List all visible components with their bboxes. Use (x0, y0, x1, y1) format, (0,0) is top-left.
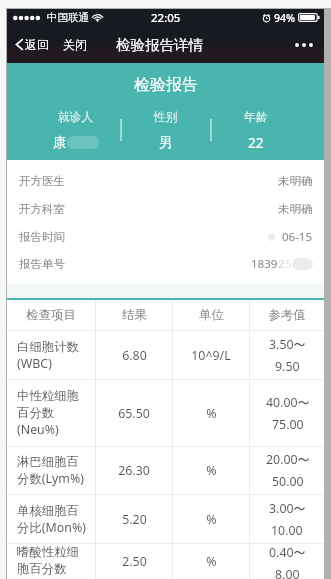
staticText: 20.00 (266, 451, 298, 468)
staticText: 未明确 (278, 174, 313, 188)
staticText: 3.50 (269, 336, 294, 353)
staticText: 10^9/L (191, 347, 231, 364)
staticText: 6.80 (122, 347, 147, 364)
staticText: 返回 (25, 37, 49, 52)
staticText: 报告时间 (19, 230, 65, 244)
staticText: 康 (53, 134, 67, 151)
staticText: 开方科室 (19, 202, 65, 216)
staticText: 检验报告 (134, 75, 198, 95)
button[interactable]: 开方医生 (7, 167, 324, 195)
staticText: 参考值 (268, 307, 306, 323)
staticText: 性别 (154, 110, 178, 125)
staticText: 94% (274, 11, 295, 25)
staticText: 65.50 (118, 405, 150, 422)
staticText: 26.30 (118, 462, 150, 479)
staticText: 中性粒细胞 百分数 (Neu%) (17, 388, 79, 438)
staticText: 中国联通 (47, 11, 89, 24)
button[interactable]: More options (291, 32, 317, 58)
staticText: 22:05 (151, 10, 181, 26)
staticText: 75.00 (272, 416, 304, 433)
staticText: 单位 (199, 307, 224, 323)
staticText: % (206, 511, 217, 528)
staticText: 10.00 (271, 522, 303, 539)
staticText: 开方医生 (19, 174, 65, 188)
staticText: 嗜酸性粒细 胞百分数 (Eos%) (17, 544, 79, 579)
staticText: 淋巴细胞百 分数(Lym%) (17, 454, 84, 487)
staticText: 1839 (251, 256, 278, 272)
staticText: 50.00 (272, 473, 304, 490)
staticText: 2.50 (122, 553, 147, 570)
staticText: 男 (159, 134, 173, 151)
staticText: 40.00 (266, 394, 298, 411)
staticText: 9.50 (275, 358, 300, 375)
staticText: 未明确 (278, 202, 313, 216)
button[interactable]: 关闭 (62, 34, 88, 55)
staticText: 5.20 (122, 511, 147, 528)
staticText: 3.00 (269, 500, 294, 517)
staticText: % (206, 462, 217, 479)
staticText: 单核细胞百 分比(Mon%) (17, 503, 86, 536)
staticText: 8.00 (275, 566, 300, 579)
staticText: % (206, 553, 217, 570)
staticText: 检验报告详情 (116, 36, 203, 54)
button[interactable]: 报告时间 (7, 223, 324, 251)
staticText: % (206, 405, 217, 422)
button[interactable]: 返回 (14, 34, 50, 55)
staticText: 就诊人 (58, 110, 94, 125)
button[interactable]: 报告单号 (7, 251, 324, 277)
staticText: 关闭 (63, 37, 87, 52)
staticText: 年龄 (244, 110, 268, 125)
staticText: 报告单号 (19, 257, 65, 271)
staticText: 2 (278, 256, 285, 272)
staticText: 白细胞计数 (WBC) (17, 339, 79, 372)
staticText: 检查项目 (26, 307, 76, 323)
button[interactable]: 开方科室 (7, 195, 324, 223)
staticText: 22 (248, 134, 264, 152)
staticText: 0.40 (269, 544, 294, 561)
staticText: 5 (285, 256, 292, 272)
staticText: 结果 (122, 307, 147, 323)
staticText: 06-15 (282, 229, 313, 245)
